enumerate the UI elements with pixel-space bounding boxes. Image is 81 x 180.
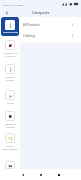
staticText: 5:05 PM | 2.6KB/s <box>3 3 23 6</box>
button[interactable]: Home <box>0 85 20 108</box>
staticText: All Products <box>23 23 40 27</box>
button[interactable]: Home Improvement <box>0 131 20 156</box>
staticText: Men's fashion <box>3 31 18 34</box>
button[interactable]: Clothing <box>20 30 81 41</box>
button[interactable]: Men's fashion <box>1 17 19 36</box>
button[interactable]: Women's fashion <box>0 60 20 85</box>
staticText: Outdoor Fun & Sports <box>3 51 18 57</box>
staticText: Home Improvement <box>2 144 18 150</box>
button[interactable]: Home <box>35 169 47 180</box>
staticText: Categories <box>32 10 50 15</box>
button[interactable]: Back <box>0 8 13 17</box>
staticText: Jewelry & Watches <box>5 122 16 128</box>
button[interactable]: Tools <box>0 156 20 169</box>
staticText: Women's fashion <box>5 75 16 81</box>
staticText: Home <box>7 101 14 104</box>
button[interactable]: Outdoor Fun & Sports <box>0 36 20 60</box>
button[interactable]: Back <box>17 169 29 180</box>
button[interactable]: All Products <box>20 19 81 30</box>
staticText: Clothing <box>23 34 35 38</box>
button[interactable]: Jewelry & Watches <box>0 108 20 131</box>
button[interactable]: Recent apps <box>53 169 65 180</box>
